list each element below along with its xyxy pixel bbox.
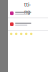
staticText: Setting (24, 0, 32, 15)
